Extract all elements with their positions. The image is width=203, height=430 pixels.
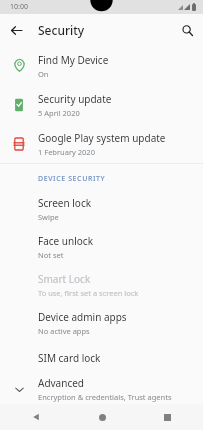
button[interactable]: Back [6,20,26,40]
staticText: Google Play system update [38,131,166,145]
staticText: 10:00 [10,2,28,12]
staticText: Advanced [38,376,84,390]
button[interactable]: Face unlock [0,228,203,266]
button[interactable]: Security update [0,85,203,124]
button[interactable]: Screen lock [0,190,203,228]
staticText: Find My Device [38,53,109,67]
staticText: SIM card lock [38,351,101,365]
button[interactable]: Recent apps [157,407,177,427]
staticText: Not set [38,250,64,260]
staticText: DEVICE SECURITY [38,174,106,184]
staticText: No active apps [38,326,90,336]
staticText: Smart Lock [38,272,91,286]
button[interactable]: Advanced [0,374,203,404]
staticText: Swipe [38,212,59,222]
staticText: Encryption & credentials, Trust agents [38,392,172,402]
staticText: 5 April 2020 [38,108,80,118]
staticText: 1 February 2020 [38,147,95,157]
button[interactable]: Search [177,20,197,40]
button[interactable]: Smart Lock [0,266,203,304]
staticText: Security [38,22,85,38]
staticText: To use, first set a screen lock [38,288,139,298]
staticText: Face unlock [38,234,93,248]
button[interactable]: Find My Device [0,46,203,85]
staticText: Screen lock [38,196,92,210]
button[interactable]: Device admin apps [0,304,203,342]
button[interactable]: Google Play system update [0,124,203,163]
button[interactable]: SIM card lock [0,342,203,374]
staticText: Device admin apps [38,310,127,324]
button[interactable]: Back [26,407,46,427]
staticText: On [38,69,49,79]
button[interactable]: Home [92,407,112,427]
staticText: Security update [38,92,112,106]
